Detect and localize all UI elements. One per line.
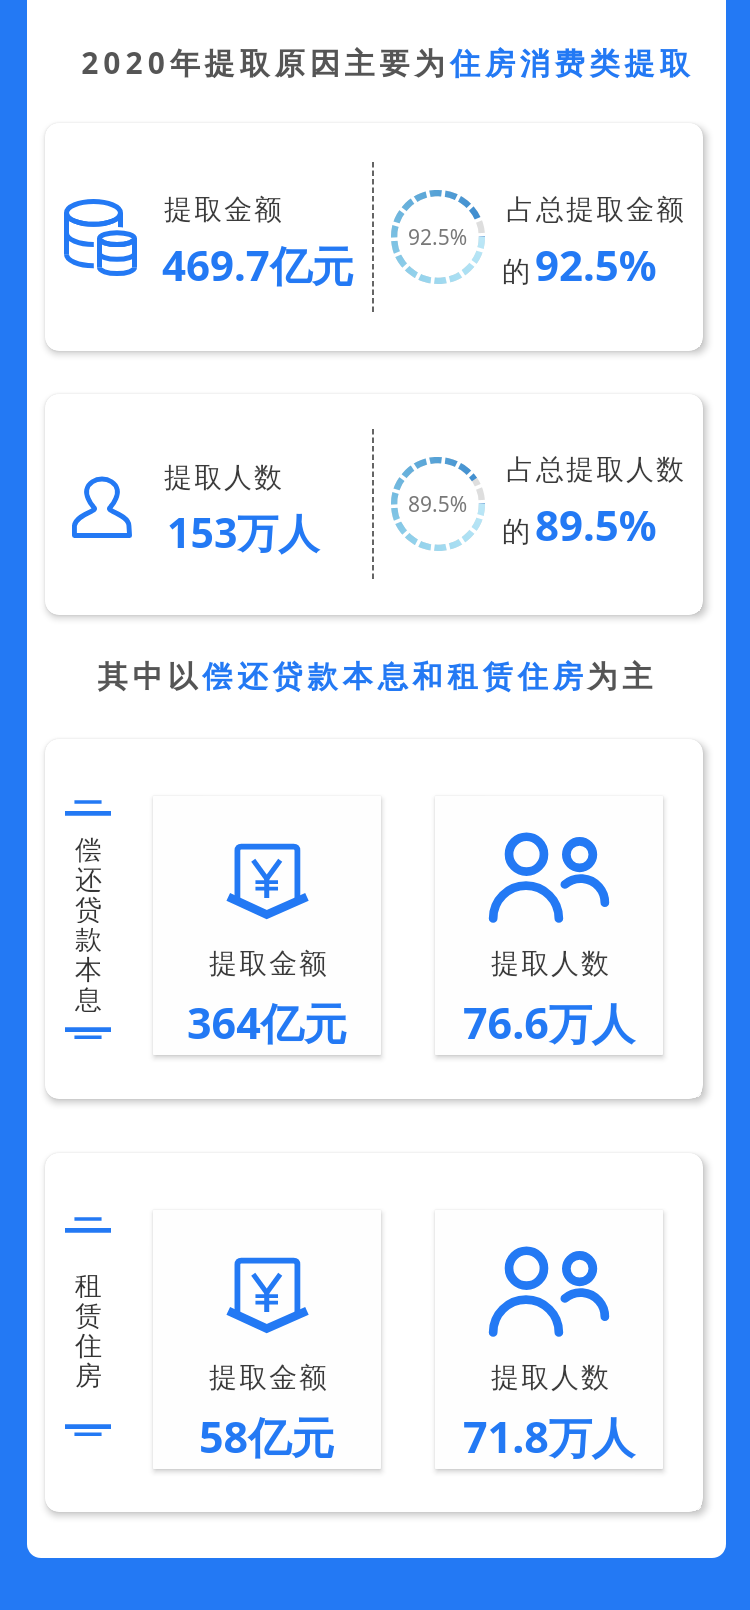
staticText: 房 (75, 1359, 102, 1389)
staticText: 提取人数 (490, 1360, 610, 1395)
staticText: 还 (75, 863, 102, 893)
staticText: 提取人数 (163, 460, 283, 495)
staticText: 469.7亿元 (162, 236, 354, 293)
staticText: 364亿元 (187, 993, 347, 1052)
staticText: 租 (75, 1269, 102, 1299)
staticText: 偿 (75, 833, 102, 863)
staticText: 71.8万人 (463, 1407, 635, 1466)
staticText: 息 (75, 983, 102, 1013)
button[interactable]: 偿 (45, 739, 703, 1099)
other: 提取金额 (227, 1256, 308, 1332)
staticText: 本 (75, 953, 102, 983)
button[interactable]: 提取人数 (435, 796, 663, 1055)
staticText: 提取人数 (490, 946, 610, 981)
staticText: 提取金额 (208, 946, 328, 981)
button[interactable]: 租 (45, 1153, 703, 1512)
staticText: 住 (75, 1329, 102, 1359)
other: 提取金额 (227, 842, 308, 918)
staticText: 贷 (75, 893, 102, 923)
button[interactable]: 提取人数 (45, 394, 703, 615)
staticText: 占总提取人数 (505, 452, 685, 487)
staticText: 58亿元 (199, 1407, 335, 1466)
staticText: 款 (75, 923, 102, 953)
staticText: 的89.5% (502, 496, 657, 553)
button[interactable]: 提取金额 (153, 796, 381, 1055)
other: 提取人数 (72, 478, 132, 538)
staticText: 2020年提取原因主要为住房消费类提取 (81, 42, 695, 83)
staticText: 153万人 (167, 504, 320, 560)
other: 提取金额 (64, 199, 137, 277)
staticText: 提取金额 (208, 1360, 328, 1395)
button[interactable]: 提取人数 (435, 1210, 663, 1469)
button[interactable]: 提取金额 (153, 1210, 381, 1469)
other: 提取人数 (488, 833, 610, 923)
staticText: 89.5% (408, 490, 468, 519)
staticText: 占总提取金额 (505, 192, 685, 227)
other: 提取人数 (488, 1247, 610, 1337)
staticText: 赁 (75, 1299, 102, 1329)
staticText: 提取金额 (163, 192, 283, 227)
button[interactable]: 提取金额 (45, 123, 703, 351)
staticText: 76.6万人 (463, 993, 635, 1052)
staticText: 的92.5% (502, 236, 657, 293)
staticText: 92.5% (408, 223, 468, 252)
staticText: 其中以偿还贷款本息和租赁住房为主 (95, 658, 655, 696)
